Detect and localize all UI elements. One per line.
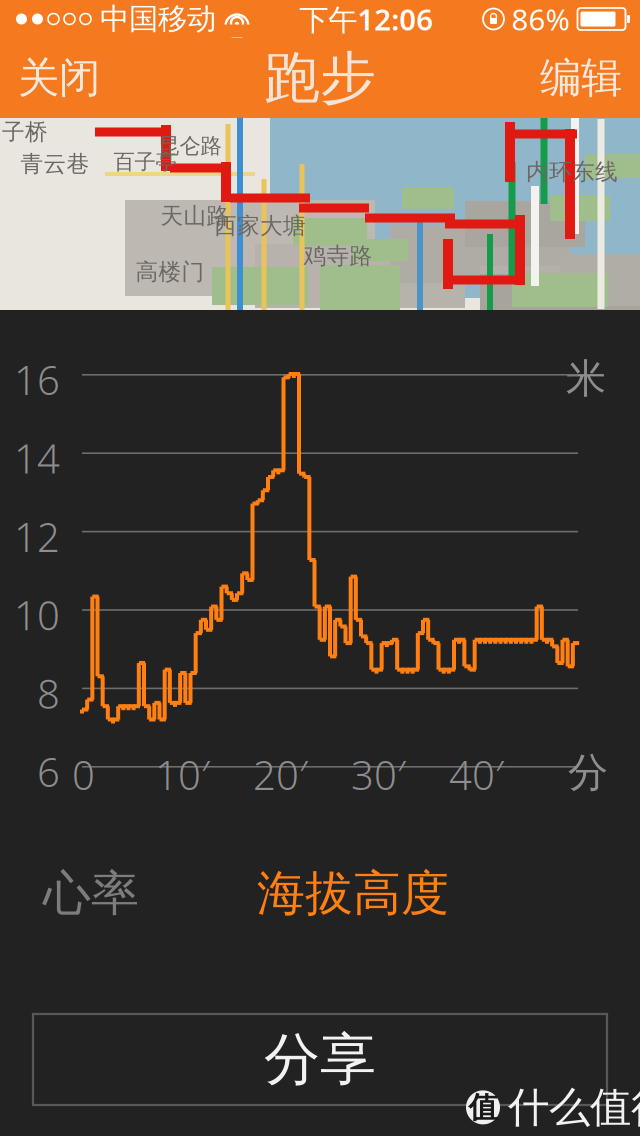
- staticText: 编辑: [540, 53, 622, 103]
- button[interactable]: 心率: [31, 856, 151, 931]
- staticText: 内环东线: [526, 158, 618, 186]
- staticText: 青云巷: [20, 150, 89, 178]
- staticText: 86%: [511, 0, 569, 38]
- staticText: 0: [72, 748, 95, 801]
- staticText: 6: [37, 745, 60, 798]
- staticText: 分享: [264, 1025, 376, 1094]
- staticText: 高楼门: [135, 258, 204, 286]
- staticText: 米: [566, 354, 606, 403]
- staticText: 20′: [253, 748, 308, 801]
- staticText: 昆仑路: [158, 133, 221, 159]
- staticText: 12: [14, 510, 60, 563]
- staticText: 西家大塘: [214, 212, 306, 240]
- staticText: 鸡寺路: [303, 242, 372, 270]
- button[interactable]: 海拔高度: [245, 856, 461, 931]
- staticText: 30′: [351, 748, 406, 801]
- staticText: 关闭: [18, 53, 100, 103]
- staticText: 分: [568, 748, 608, 797]
- staticText: 心率: [43, 864, 139, 923]
- staticText: 值: [468, 1089, 497, 1125]
- staticText: 子桥: [2, 118, 48, 146]
- staticText: 什么值得买: [508, 1082, 640, 1133]
- staticText: 海拔高度: [257, 864, 449, 923]
- staticText: 天山路: [160, 202, 229, 230]
- staticText: 10: [14, 588, 60, 641]
- staticText: 14: [14, 431, 60, 484]
- staticText: 16: [14, 353, 60, 406]
- staticText: 百子亭: [113, 149, 176, 175]
- staticText: 40′: [449, 748, 504, 801]
- button[interactable]: 关闭: [0, 38, 118, 118]
- staticText: 下午12:06: [299, 0, 433, 38]
- staticText: 10′: [155, 748, 210, 801]
- staticText: 跑步: [264, 44, 376, 112]
- button[interactable]: 编辑: [522, 38, 640, 118]
- button[interactable]: 分享: [33, 1014, 607, 1105]
- staticText: 8: [37, 667, 60, 720]
- staticText: 中国移动: [100, 1, 216, 37]
